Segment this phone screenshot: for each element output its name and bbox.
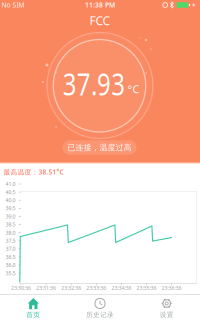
staticText: 23:30:36 bbox=[11, 284, 31, 292]
staticText: 23:34:36 bbox=[111, 284, 131, 292]
staticText: 23:31:36 bbox=[36, 284, 56, 292]
staticText: FCC bbox=[89, 12, 110, 28]
staticText: 设置 bbox=[160, 311, 174, 319]
staticText: 37.93 bbox=[54, 63, 134, 104]
staticText: 11:38 PM bbox=[85, 1, 115, 9]
staticText: 40.0 bbox=[5, 197, 15, 204]
button[interactable]: 首页 bbox=[0, 296, 66, 320]
button[interactable]: 设置 bbox=[134, 296, 200, 320]
staticText: 35.5 bbox=[5, 270, 15, 277]
staticText: 36.5 bbox=[5, 253, 15, 260]
staticText: 36.0 bbox=[5, 261, 15, 269]
staticText: 39.5 bbox=[5, 205, 15, 212]
staticText: 23:32:36 bbox=[61, 284, 81, 292]
staticText: 37.5 bbox=[5, 237, 15, 244]
button[interactable]: 历史记录 bbox=[67, 296, 133, 320]
staticText: °C bbox=[127, 82, 139, 96]
staticText: 41.0 bbox=[5, 180, 15, 188]
staticText: 23:35:36 bbox=[136, 284, 156, 292]
staticText: 39.0 bbox=[5, 213, 15, 220]
staticText: 23:33:36 bbox=[86, 284, 106, 292]
staticText: 38.0 bbox=[5, 229, 15, 236]
staticText: 38.5 bbox=[5, 221, 15, 228]
staticText: 37.0 bbox=[5, 245, 15, 252]
button[interactable]: 已连接，温度过高 bbox=[62, 140, 136, 155]
staticText: 最高温度：38.51°C bbox=[3, 168, 63, 176]
staticText: 23:36:36 bbox=[162, 284, 182, 292]
staticText: 历史记录 bbox=[86, 311, 114, 319]
staticText: No SIM bbox=[1, 1, 24, 9]
staticText: 40.5 bbox=[5, 189, 15, 196]
staticText: 已连接，温度过高 bbox=[67, 143, 131, 152]
staticText: 首页 bbox=[26, 311, 40, 319]
